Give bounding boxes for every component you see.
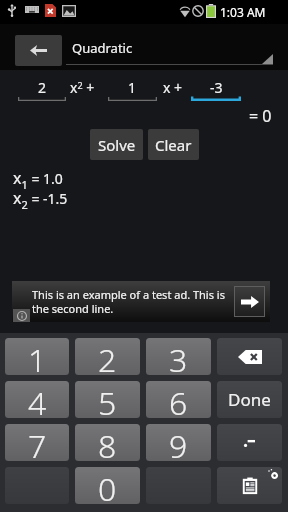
staticText: x2 +: [70, 78, 95, 96]
button[interactable]: Ad info: [13, 309, 30, 322]
button[interactable]: 9: [146, 424, 211, 461]
staticText: 6: [169, 381, 188, 418]
button[interactable]: Open ad: [235, 287, 264, 316]
button[interactable]: 4: [5, 381, 69, 418]
button[interactable]: Done: [217, 381, 282, 418]
staticText: 3: [169, 338, 188, 375]
staticText: Solve: [98, 135, 136, 155]
staticText: Clear: [155, 135, 192, 155]
button[interactable]: Clipboard: [217, 467, 282, 504]
staticText: = 0: [249, 105, 272, 127]
staticText: 2: [38, 78, 47, 96]
staticText: Quadratic: [72, 39, 133, 57]
staticText: x +: [163, 78, 183, 96]
button[interactable]: 3: [146, 338, 211, 375]
button[interactable]: Delete: [217, 338, 282, 375]
button[interactable]: 5: [75, 381, 140, 418]
button[interactable]: 2: [75, 338, 140, 375]
button[interactable]: 6: [146, 381, 211, 418]
staticText: 1: [28, 338, 47, 375]
button[interactable]: 8: [75, 424, 140, 461]
staticText: 0: [98, 467, 117, 504]
staticText: 2: [98, 338, 117, 375]
staticText: 4: [28, 381, 47, 418]
button[interactable]: Quadratic: [66, 33, 273, 65]
staticText: x2 = -1.5: [13, 187, 68, 212]
staticText: 1: [128, 78, 137, 96]
button[interactable]: Back: [15, 35, 62, 66]
staticText: 5: [98, 381, 117, 418]
staticText: Done: [228, 388, 271, 411]
staticText: 9: [169, 424, 188, 461]
button[interactable]: Ad info: [12, 281, 270, 322]
button[interactable]: 7: [5, 424, 69, 461]
staticText: 7: [28, 424, 47, 461]
button[interactable]: Solve: [90, 129, 143, 160]
button[interactable]: Decimal and minus: [217, 424, 282, 461]
button[interactable]: 0: [75, 467, 140, 504]
staticText: x1 = 1.0: [13, 167, 63, 192]
staticText: 8: [98, 424, 117, 461]
staticText: This is an example of a test ad. This is…: [32, 287, 225, 316]
staticText: 1:03 AM: [220, 4, 266, 20]
button[interactable]: Clear: [148, 129, 199, 160]
staticText: -3: [210, 78, 223, 96]
button[interactable]: 1: [5, 338, 69, 375]
